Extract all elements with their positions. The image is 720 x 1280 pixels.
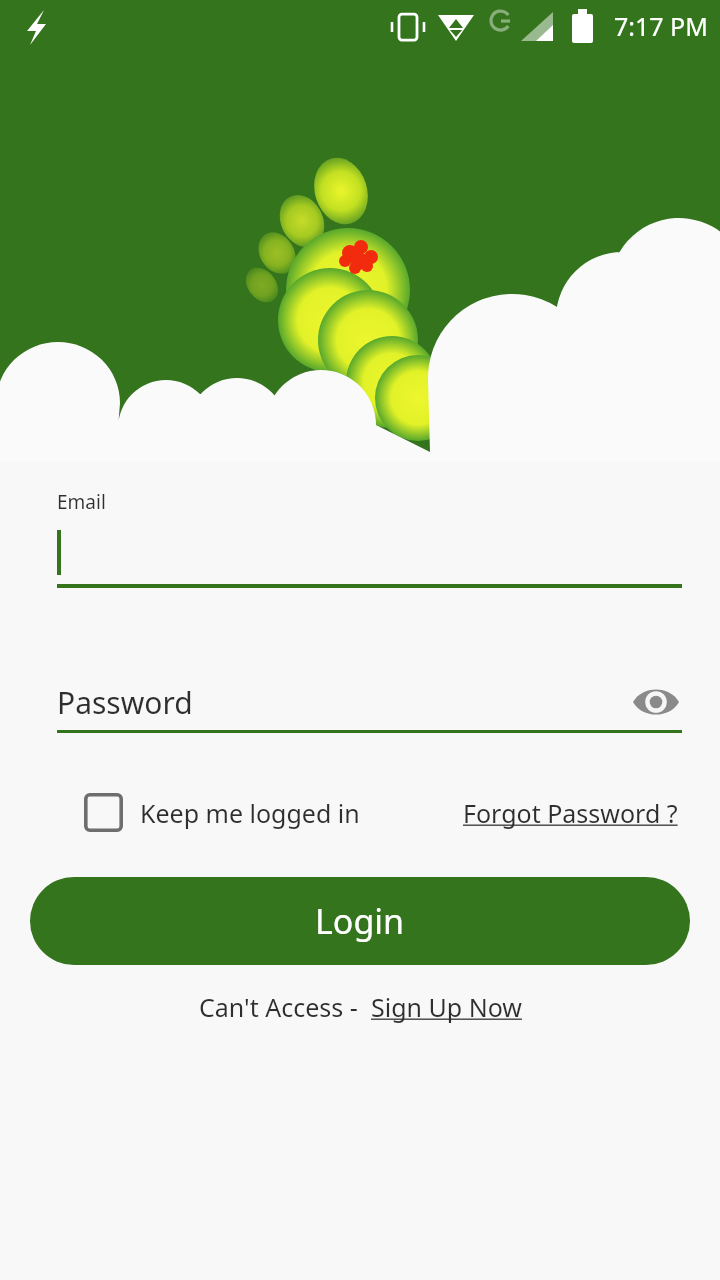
button[interactable]: Show password bbox=[630, 678, 682, 726]
staticText: Forgot Password ? bbox=[463, 796, 678, 830]
button[interactable]: Forgot Password ? bbox=[463, 796, 678, 830]
button[interactable]: Keep me logged in bbox=[84, 793, 360, 832]
staticText: Keep me logged in bbox=[140, 796, 360, 830]
staticText: Email bbox=[57, 489, 106, 515]
staticText: 7:17 PM bbox=[614, 9, 708, 43]
staticText: Login bbox=[315, 898, 405, 944]
button[interactable]: Password bbox=[57, 678, 682, 733]
button[interactable]: Sign Up Now bbox=[371, 990, 522, 1024]
button[interactable]: Login bbox=[30, 877, 690, 965]
staticText: Sign Up Now bbox=[371, 990, 522, 1024]
staticText: Password bbox=[57, 682, 193, 723]
staticText: Can't Access - bbox=[199, 990, 358, 1024]
button[interactable]: Email bbox=[57, 489, 682, 588]
